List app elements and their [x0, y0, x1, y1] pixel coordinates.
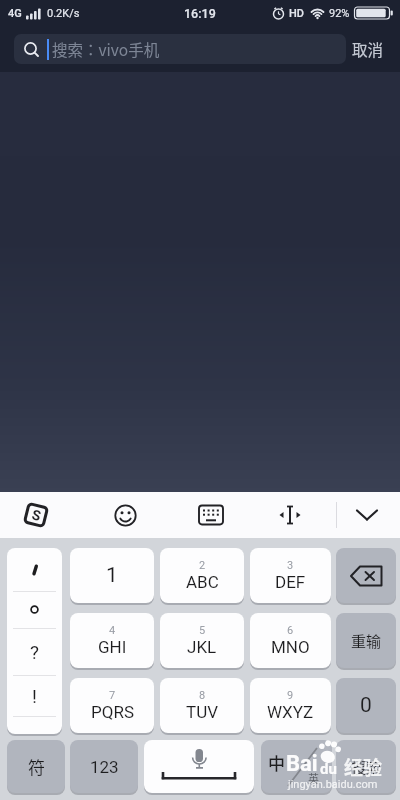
staticText: 重输 [351, 630, 382, 652]
button[interactable] [336, 548, 396, 603]
staticText: 6 [287, 624, 294, 637]
staticText: 2 [199, 559, 206, 572]
button[interactable]: 1 [70, 548, 154, 603]
button[interactable] [7, 591, 62, 628]
staticText: MNO [271, 637, 310, 657]
button[interactable] [144, 740, 254, 793]
staticText: 取消 [352, 38, 384, 60]
staticText: JKL [187, 637, 217, 657]
button[interactable]: 取消 [342, 32, 394, 66]
button[interactable]: 搜索：vivo手机 [14, 34, 346, 64]
button[interactable]: 4 [70, 613, 154, 668]
button[interactable]: S [20, 499, 52, 531]
button[interactable]: 7 [70, 678, 154, 733]
button[interactable]: 9 [250, 678, 331, 733]
staticText: 0 [360, 693, 372, 718]
staticText: 英 [308, 770, 319, 786]
staticText: 1 [106, 563, 118, 588]
staticText: ? [30, 641, 39, 663]
staticText: 8 [199, 689, 206, 702]
button[interactable]: 0 [336, 678, 396, 733]
staticText: 中 [268, 750, 285, 775]
button[interactable] [197, 501, 225, 529]
button[interactable]: 6 [250, 613, 331, 668]
button[interactable]: 搜索 [336, 740, 396, 793]
button[interactable]: 2 [160, 548, 244, 603]
staticText: TUV [186, 702, 218, 722]
staticText: Bai [286, 751, 318, 777]
button[interactable]: 符 [7, 740, 65, 793]
staticText: jingyan.baidu.com [288, 778, 378, 791]
staticText: 搜索：vivo手机 [52, 38, 160, 60]
staticText: 4G [8, 7, 22, 20]
staticText: PQRS [91, 702, 134, 722]
staticText: S [30, 506, 43, 524]
staticText: HD [289, 7, 305, 20]
staticText: ABC [186, 572, 219, 592]
staticText: WXYZ [267, 702, 314, 722]
button[interactable] [7, 548, 62, 591]
button[interactable]: ! [7, 675, 62, 716]
staticText: ! [32, 685, 37, 707]
staticText: 92% [329, 7, 350, 20]
button[interactable] [276, 501, 304, 529]
button[interactable]: 中 [261, 740, 332, 793]
button[interactable]: 3 [250, 548, 331, 603]
staticText: 符 [28, 754, 45, 779]
staticText: 7 [109, 689, 116, 702]
button[interactable] [7, 716, 62, 734]
staticText: du [320, 760, 337, 778]
staticText: GHI [98, 637, 127, 657]
button[interactable] [111, 501, 139, 529]
staticText: 123 [90, 757, 119, 777]
button[interactable]: ? [7, 628, 62, 675]
button[interactable]: 123 [70, 740, 138, 793]
button[interactable]: 8 [160, 678, 244, 733]
staticText: 5 [199, 624, 206, 637]
staticText: 搜索 [351, 756, 382, 778]
staticText: 9 [287, 689, 294, 702]
staticText: DEF [275, 572, 306, 592]
staticText: 经验 [344, 753, 383, 781]
button[interactable] [352, 501, 382, 529]
button[interactable]: 5 [160, 613, 244, 668]
staticText: 3 [287, 559, 294, 572]
staticText: 16:19 [184, 6, 216, 21]
staticText: 4 [109, 624, 116, 637]
staticText: 0.2K/s [47, 7, 80, 20]
button[interactable]: 重输 [336, 613, 396, 668]
